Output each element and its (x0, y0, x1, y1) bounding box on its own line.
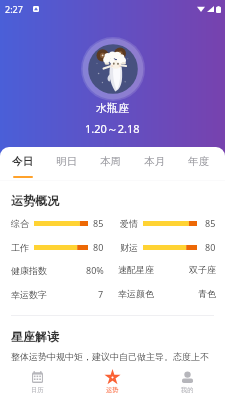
staticText: 80 (205, 241, 216, 253)
button[interactable]: 财运 (120, 241, 216, 253)
button[interactable]: 幸运数字 (11, 288, 104, 300)
staticText: 综合 (11, 218, 29, 229)
button[interactable]: 日历 (0, 364, 75, 400)
staticText: 双子座 (189, 264, 216, 275)
staticText: 星座解读 (11, 329, 59, 344)
staticText: 本周 (100, 155, 121, 168)
button[interactable]: 综合 (11, 217, 104, 229)
button[interactable]: 幸运颜色 (118, 288, 216, 299)
staticText: 整体运势中规中矩，建议中自己做主导。态度上不太 (11, 351, 214, 375)
staticText: 幸运数字 (11, 289, 47, 300)
staticText: 日历 (31, 386, 44, 394)
button[interactable]: 本月 (132, 147, 176, 180)
staticText: 明日 (56, 155, 77, 168)
staticText: 运势概况 (11, 193, 59, 208)
button[interactable]: 本周 (88, 147, 132, 180)
staticText: 80 (93, 241, 104, 253)
staticText: 80% (86, 264, 104, 276)
staticText: 2:27 (5, 3, 23, 15)
staticText: 今日 (12, 155, 33, 168)
staticText: 85 (205, 217, 216, 229)
button[interactable]: 我的 (150, 364, 225, 400)
button[interactable]: 今日 (0, 147, 44, 180)
button[interactable]: 速配星座 (118, 264, 216, 275)
staticText: 工作 (11, 242, 29, 253)
button[interactable]: 年度 (176, 147, 220, 180)
staticText: 本月 (144, 155, 165, 168)
staticText: 我的 (181, 386, 194, 394)
staticText: 运势 (106, 386, 119, 394)
staticText: 速配星座 (118, 264, 154, 275)
button[interactable]: 工作 (11, 241, 104, 253)
button[interactable]: 明日 (44, 147, 88, 180)
staticText: 幸运颜色 (118, 288, 154, 299)
staticText: 85 (93, 217, 104, 229)
staticText: 爱情 (120, 218, 138, 229)
button[interactable]: 运势 (75, 364, 150, 400)
button[interactable]: 爱情 (120, 217, 216, 229)
staticText: 1.20～2.18 (85, 121, 140, 136)
button[interactable]: 健康指数 (11, 264, 104, 276)
staticText: 健康指数 (11, 265, 47, 276)
staticText: 7 (98, 288, 104, 300)
staticText: 财运 (120, 242, 138, 253)
staticText: 青色 (198, 288, 216, 299)
staticText: 水瓶座 (96, 101, 129, 115)
staticText: 年度 (188, 155, 209, 168)
